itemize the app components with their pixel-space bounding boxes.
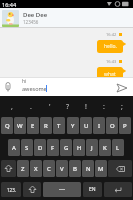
staticText: 16:44 bbox=[2, 1, 17, 8]
staticText: 16:43 bbox=[106, 59, 117, 64]
staticText: U bbox=[84, 122, 89, 130]
button[interactable]: Y bbox=[67, 117, 79, 134]
button[interactable]: W bbox=[14, 117, 26, 134]
staticText: awesome bbox=[22, 85, 47, 92]
staticText: ! bbox=[85, 102, 87, 112]
button[interactable]: X bbox=[30, 160, 42, 177]
staticText: D bbox=[38, 144, 43, 152]
button[interactable]: T bbox=[53, 117, 65, 134]
button[interactable]: V bbox=[56, 160, 68, 177]
staticText: ; bbox=[121, 102, 123, 112]
staticText: M bbox=[98, 165, 104, 173]
staticText: ' bbox=[49, 102, 51, 112]
staticText: X bbox=[34, 165, 38, 173]
staticText: J bbox=[91, 144, 93, 152]
staticText: what bbox=[104, 71, 116, 77]
staticText: S bbox=[25, 144, 29, 152]
button[interactable] bbox=[1, 160, 16, 177]
staticText: P bbox=[123, 122, 127, 130]
staticText: W bbox=[17, 122, 23, 130]
button[interactable]: F bbox=[47, 139, 59, 156]
staticText: L bbox=[116, 144, 120, 152]
button[interactable] bbox=[2, 10, 19, 27]
staticText: O bbox=[110, 122, 115, 130]
button[interactable]: : bbox=[95, 102, 113, 112]
staticText: 16:42 bbox=[106, 32, 117, 37]
button[interactable]: ' bbox=[40, 102, 59, 112]
button[interactable]: H bbox=[73, 139, 85, 156]
button[interactable] bbox=[23, 182, 41, 197]
staticText: A bbox=[12, 144, 16, 152]
button[interactable]: O bbox=[106, 117, 118, 134]
button[interactable]: A bbox=[8, 139, 20, 156]
button[interactable]: ; bbox=[113, 102, 131, 112]
staticText: Dee Dee bbox=[23, 11, 48, 19]
staticText: V bbox=[60, 165, 64, 173]
staticText: N bbox=[86, 165, 91, 173]
button[interactable]: . bbox=[21, 102, 40, 112]
button[interactable]: N bbox=[82, 160, 94, 177]
staticText: K bbox=[103, 144, 107, 152]
staticText: EN bbox=[89, 186, 96, 193]
staticText: , bbox=[11, 102, 13, 112]
button[interactable]: EN bbox=[83, 182, 102, 197]
button[interactable]: D bbox=[34, 139, 46, 156]
staticText: hello. bbox=[104, 43, 117, 50]
button[interactable] bbox=[108, 160, 132, 177]
button[interactable]: I bbox=[93, 117, 105, 134]
staticText: I bbox=[98, 122, 101, 130]
staticText: Q bbox=[5, 122, 10, 130]
button[interactable]: Z bbox=[17, 160, 29, 177]
staticText: F bbox=[51, 144, 55, 152]
button[interactable]: G bbox=[60, 139, 72, 156]
staticText: E bbox=[31, 122, 35, 130]
staticText: hi bbox=[22, 78, 27, 85]
button[interactable]: R bbox=[40, 117, 52, 134]
button[interactable]: B bbox=[69, 160, 81, 177]
button[interactable]: ? bbox=[59, 102, 77, 112]
button[interactable]: P bbox=[119, 117, 131, 134]
staticText: C bbox=[47, 165, 51, 173]
staticText: ? bbox=[66, 102, 70, 112]
button[interactable]: hello. bbox=[97, 40, 123, 53]
button[interactable]: 123. bbox=[1, 182, 21, 197]
staticText: : bbox=[103, 102, 105, 112]
button[interactable]: S bbox=[21, 139, 33, 156]
button[interactable]: U bbox=[80, 117, 92, 134]
staticText: R bbox=[44, 122, 48, 130]
staticText: Y bbox=[71, 122, 75, 130]
button[interactable]: what bbox=[97, 67, 123, 77]
button[interactable]: J bbox=[86, 139, 98, 156]
button[interactable]: Q bbox=[1, 117, 13, 134]
staticText: . bbox=[30, 102, 32, 112]
button[interactable]: L bbox=[112, 139, 124, 156]
staticText: G bbox=[64, 144, 69, 152]
button[interactable] bbox=[43, 182, 81, 197]
staticText: 123456 bbox=[23, 19, 39, 25]
staticText: B bbox=[73, 165, 77, 173]
staticText: H bbox=[77, 144, 82, 152]
staticText: 123. bbox=[7, 187, 16, 193]
staticText: Z bbox=[21, 165, 25, 173]
button[interactable]: E bbox=[27, 117, 39, 134]
button[interactable] bbox=[116, 83, 128, 93]
button[interactable]: , bbox=[2, 102, 21, 112]
button[interactable] bbox=[104, 182, 132, 197]
staticText: T bbox=[57, 122, 61, 130]
button[interactable]: C bbox=[43, 160, 55, 177]
button[interactable]: ! bbox=[77, 102, 95, 112]
button[interactable]: M bbox=[95, 160, 107, 177]
button[interactable]: K bbox=[99, 139, 111, 156]
